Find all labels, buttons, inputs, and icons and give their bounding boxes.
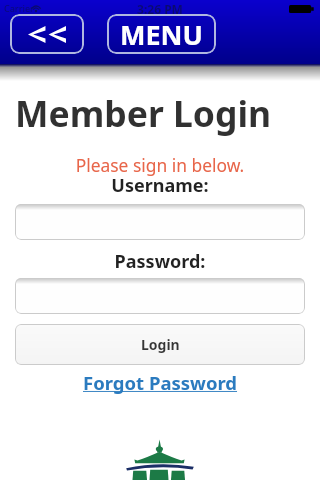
staticText: Password: [0,249,320,274]
staticText: MENU [120,16,203,53]
button[interactable]: Back [10,14,84,54]
button[interactable]: Forgot Password [79,368,242,397]
button[interactable] [15,278,305,314]
staticText: Please sign in below. [0,153,320,177]
button[interactable] [15,204,305,240]
staticText: Username: [0,173,320,198]
staticText: Carrier [4,2,34,14]
button[interactable]: MENU [107,14,216,54]
button[interactable]: Login [15,324,305,365]
staticText: 3:26 PM [0,1,320,15]
staticText: Member Login [15,89,272,137]
staticText: Login [141,335,180,354]
